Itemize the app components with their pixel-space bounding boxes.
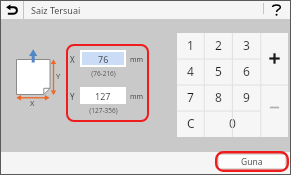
button[interactable]: 127 <box>80 87 126 104</box>
staticText: 4 <box>187 63 194 79</box>
staticText: 5 <box>215 63 222 79</box>
button[interactable]: 3 <box>232 33 260 59</box>
button[interactable]: 9 <box>232 85 260 111</box>
staticText: 3 <box>243 37 250 53</box>
staticText: Saiz Tersuai <box>31 4 81 16</box>
staticText: 0 <box>229 115 236 131</box>
staticText: X <box>70 54 75 65</box>
staticText: Y <box>56 71 61 81</box>
staticText: 6 <box>243 63 250 79</box>
staticText: 7 <box>187 89 194 105</box>
staticText: 8 <box>215 89 222 105</box>
button[interactable]: Guna <box>218 154 286 169</box>
staticText: 1 <box>187 37 194 53</box>
staticText: 2 <box>215 37 222 53</box>
staticText: C <box>187 115 195 131</box>
staticText: (127-356) <box>89 106 118 115</box>
button[interactable]: Help <box>267 0 285 19</box>
staticText: 9 <box>243 89 250 105</box>
staticText: Guna <box>241 156 263 168</box>
button[interactable]: Minus <box>261 85 288 137</box>
button[interactable]: 7 <box>177 85 204 111</box>
staticText: (76-216) <box>91 69 116 78</box>
staticText: mm <box>130 92 144 102</box>
staticText: Y <box>70 91 75 102</box>
button[interactable]: 8 <box>204 85 232 111</box>
button[interactable]: 0 <box>204 111 261 137</box>
staticText: 76 <box>98 53 109 65</box>
staticText: mm <box>130 55 144 65</box>
button[interactable]: 5 <box>204 59 232 85</box>
button[interactable]: 76 <box>80 50 126 67</box>
staticText: 127 <box>95 90 111 102</box>
button[interactable]: 4 <box>177 59 204 85</box>
button[interactable]: 2 <box>204 33 232 59</box>
button[interactable]: 1 <box>177 33 204 59</box>
button[interactable]: 6 <box>232 59 260 85</box>
button[interactable]: C <box>177 111 204 137</box>
button[interactable]: Plus <box>261 33 288 85</box>
button[interactable]: Back <box>0 0 23 19</box>
staticText: X <box>30 98 35 108</box>
